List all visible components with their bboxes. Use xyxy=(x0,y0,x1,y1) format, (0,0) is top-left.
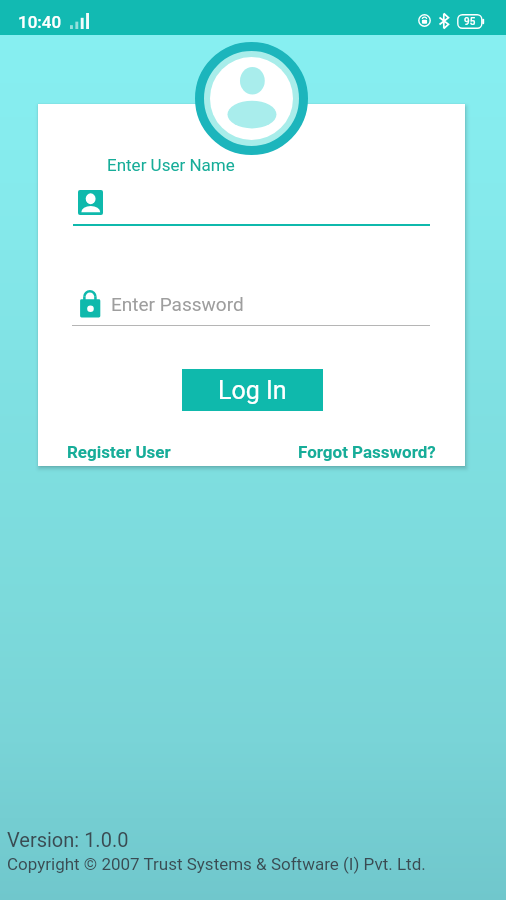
button[interactable]: Forgot Password? xyxy=(298,442,436,462)
other: User name xyxy=(78,190,103,215)
staticText: Enter User Name xyxy=(107,155,235,175)
staticText: Enter Password xyxy=(111,293,244,315)
button[interactable]: Log In xyxy=(182,369,323,411)
button[interactable]: Register User xyxy=(67,442,171,462)
staticText: 95 xyxy=(464,16,476,28)
staticText: Version: 1.0.0 xyxy=(7,828,129,851)
staticText: 10:40 xyxy=(18,12,62,32)
staticText: Copyright © 2007 Trust Systems & Softwar… xyxy=(7,854,426,874)
staticText: Log In xyxy=(218,376,287,405)
staticText: Register User xyxy=(67,442,171,462)
staticText: Forgot Password? xyxy=(298,442,436,462)
other: Password xyxy=(78,289,102,319)
